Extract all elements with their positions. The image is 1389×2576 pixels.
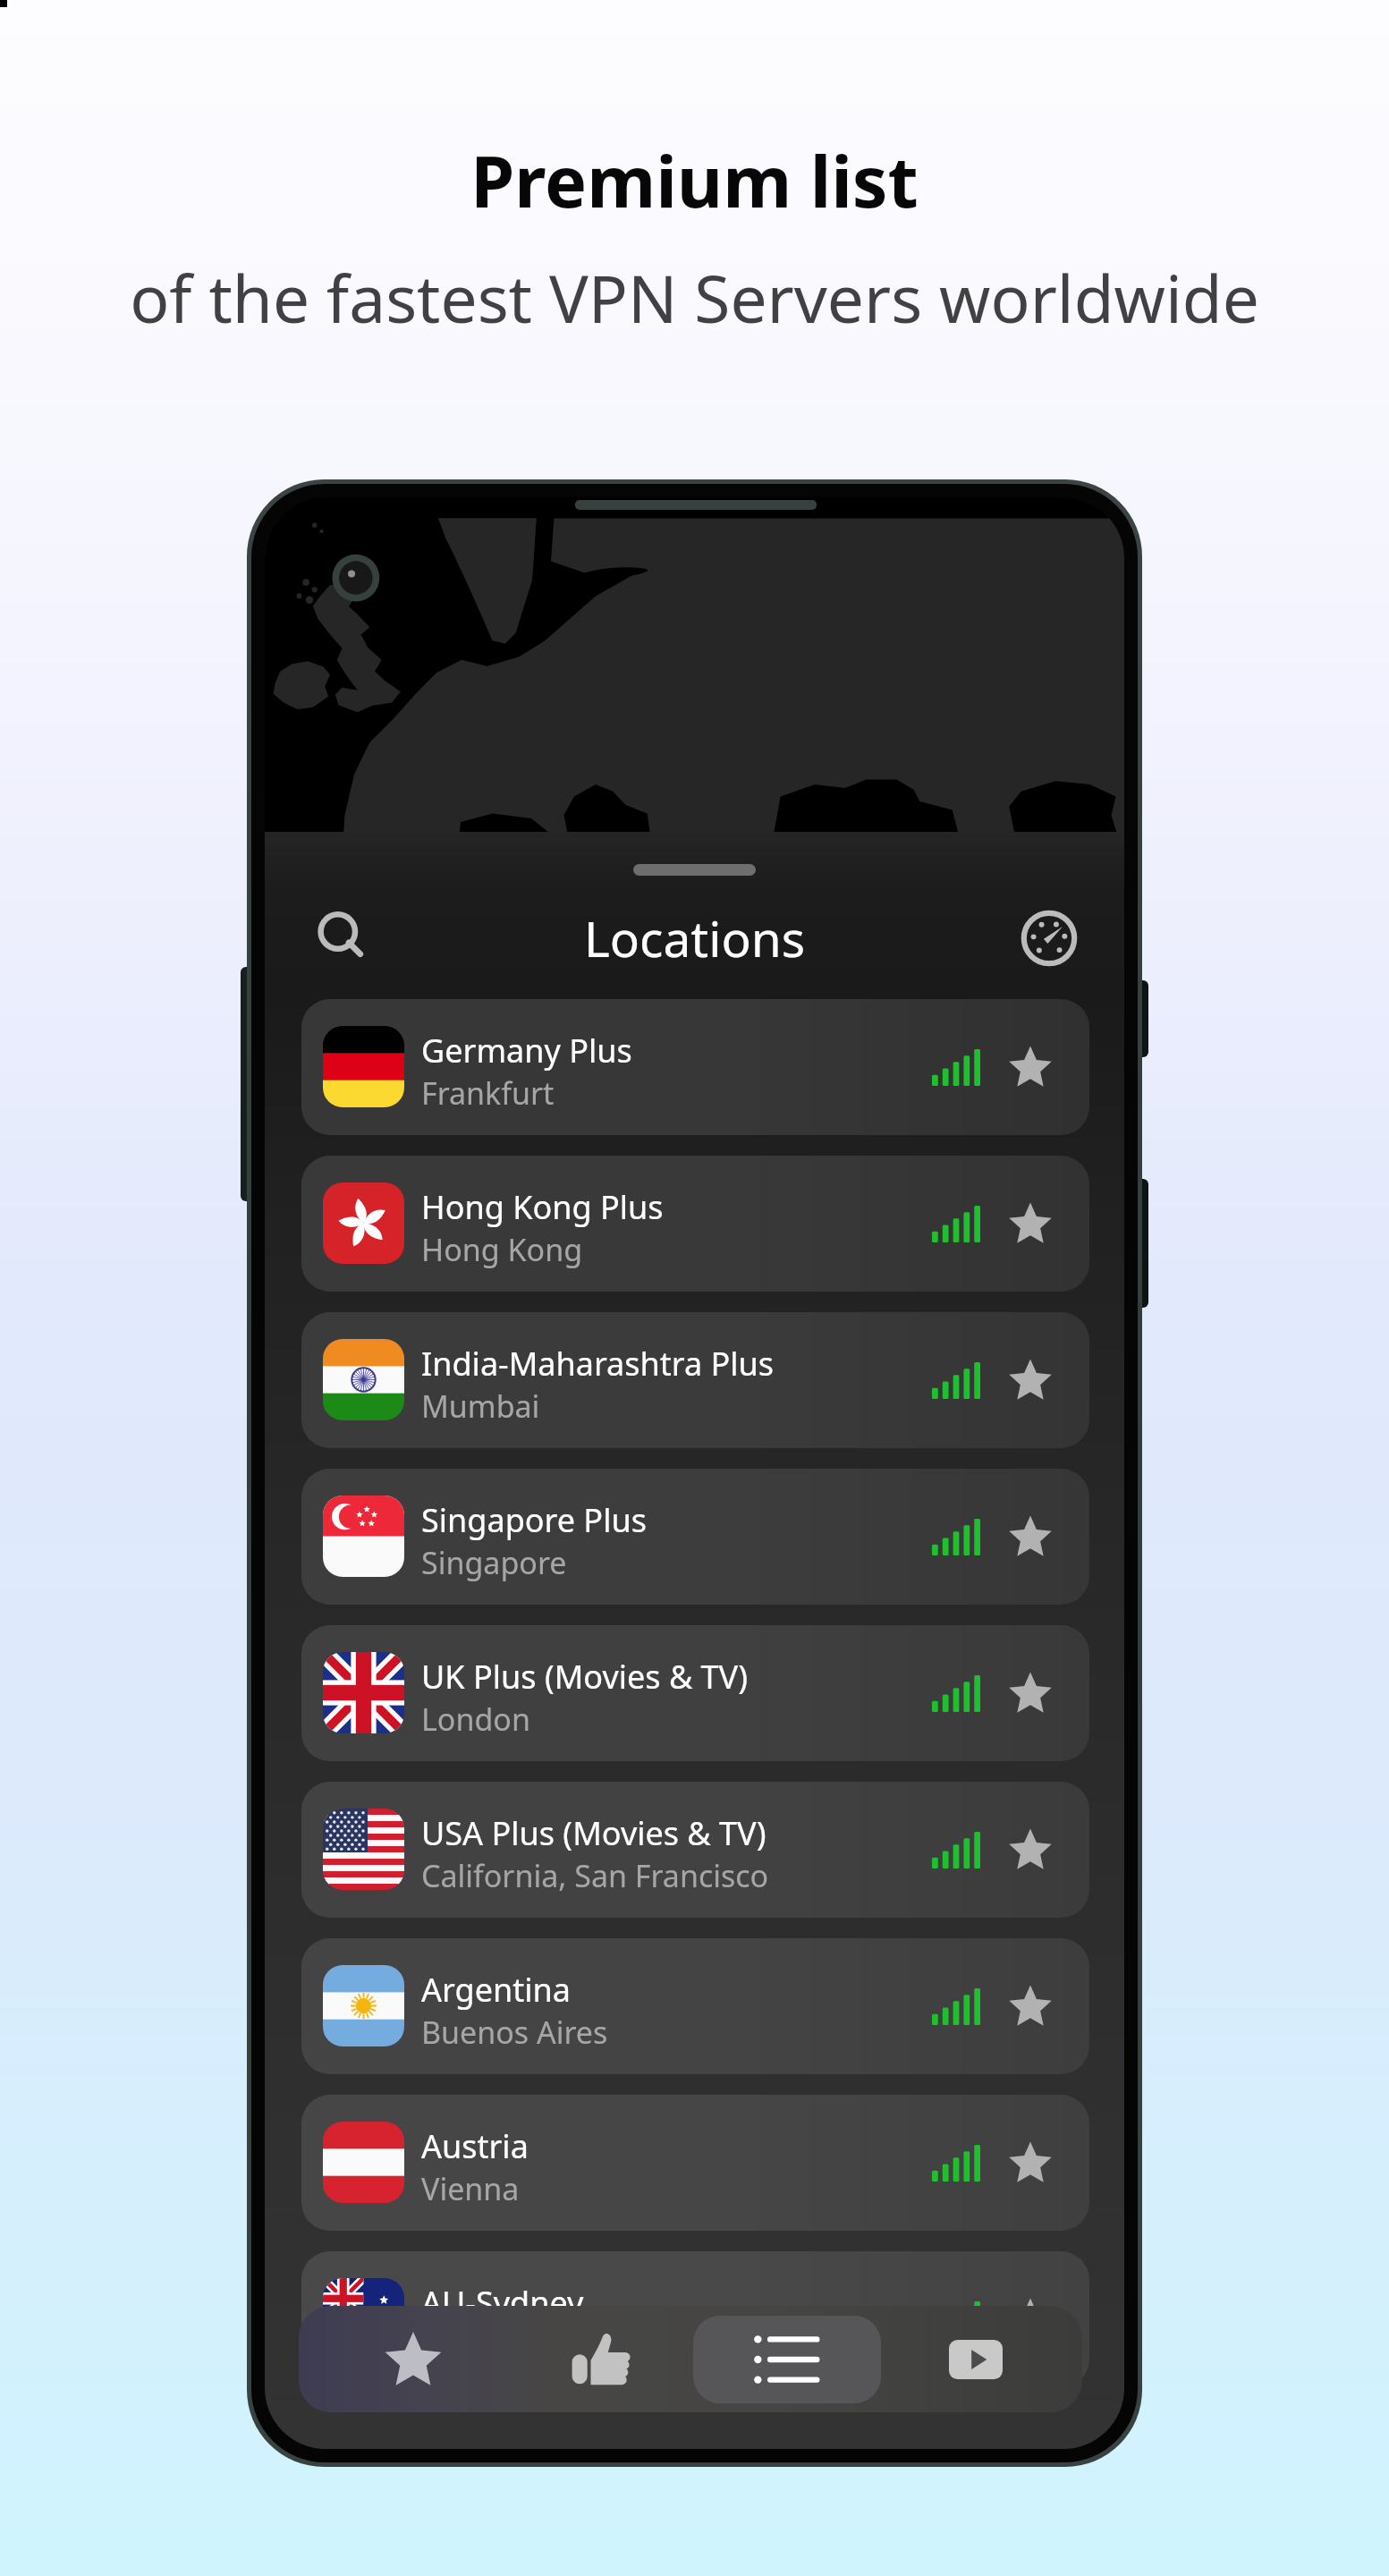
staticText: Austria bbox=[421, 2124, 529, 2168]
button[interactable]: Singapore Plus bbox=[301, 1469, 1089, 1605]
button[interactable]: Add to favorites bbox=[1008, 1045, 1053, 1089]
staticText: India-Maharashtra Plus bbox=[421, 1342, 775, 1385]
staticText: Hong Kong bbox=[421, 1229, 583, 1270]
button[interactable]: Add to favorites bbox=[1008, 1201, 1053, 1246]
button[interactable]: Speed test bbox=[997, 886, 1100, 989]
button[interactable]: Add to favorites bbox=[1008, 2297, 1053, 2342]
staticText: Singapore bbox=[421, 1542, 567, 1583]
staticText: Germany Plus bbox=[421, 1029, 632, 1072]
button[interactable]: Favorites bbox=[317, 2306, 510, 2412]
button[interactable]: Add to favorites bbox=[1008, 1514, 1053, 1559]
staticText: Locations bbox=[584, 904, 806, 971]
button[interactable]: Add to favorites bbox=[1008, 1827, 1053, 1872]
button[interactable]: Search bbox=[292, 886, 394, 989]
button[interactable]: Hong Kong Plus bbox=[301, 1156, 1089, 1292]
button[interactable]: Add to favorites bbox=[1008, 1984, 1053, 2029]
button[interactable]: Add to favorites bbox=[1008, 1358, 1053, 1402]
button[interactable]: Streaming bbox=[879, 2306, 1072, 2412]
staticText: Vienna bbox=[421, 2168, 520, 2209]
button[interactable]: Argentina bbox=[301, 1938, 1089, 2074]
staticText: Mumbai bbox=[421, 1385, 540, 1427]
staticText: Argentina bbox=[421, 1968, 571, 2012]
staticText: Hong Kong Plus bbox=[421, 1185, 664, 1229]
staticText: AU-Sydney bbox=[421, 2281, 584, 2325]
staticText: of the fastest VPN Servers worldwide bbox=[130, 253, 1259, 342]
staticText: Premium list bbox=[470, 132, 919, 229]
button[interactable]: India-Maharashtra Plus bbox=[301, 1312, 1089, 1448]
button[interactable]: USA Plus (Movies & TV) bbox=[301, 1782, 1089, 1918]
staticText: Singapore Plus bbox=[421, 1498, 647, 1542]
button[interactable]: Austria bbox=[301, 2095, 1089, 2231]
button[interactable]: Add to favorites bbox=[1008, 2140, 1053, 2185]
staticText: Frankfurt bbox=[421, 1072, 555, 1114]
button[interactable]: Recommended bbox=[503, 2306, 696, 2412]
staticText: Buenos Aires bbox=[421, 2012, 608, 2053]
button[interactable]: Germany Plus bbox=[301, 999, 1089, 1135]
staticText: Sydney bbox=[421, 2325, 523, 2366]
button[interactable]: Add to favorites bbox=[1008, 1671, 1053, 1716]
staticText: USA Plus (Movies & TV) bbox=[421, 1811, 766, 1855]
button[interactable]: All locations bbox=[690, 2306, 884, 2412]
staticText: UK Plus (Movies & TV) bbox=[421, 1655, 749, 1699]
button[interactable]: AU-Sydney bbox=[301, 2251, 1089, 2387]
staticText: London bbox=[421, 1699, 530, 1740]
button[interactable]: UK Plus (Movies & TV) bbox=[301, 1625, 1089, 1761]
staticText: California, San Francisco bbox=[421, 1855, 769, 1896]
